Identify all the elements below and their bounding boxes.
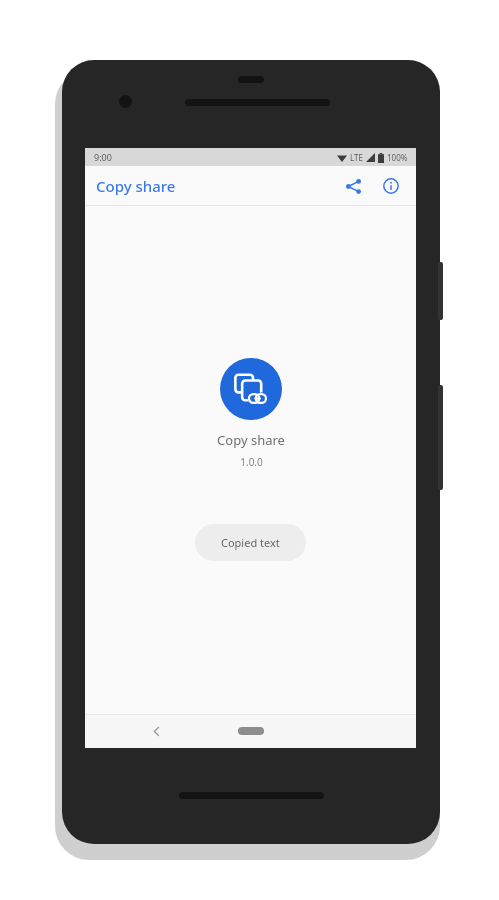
- staticText: 9:00: [94, 151, 112, 163]
- staticText: Copy share: [217, 431, 285, 449]
- button[interactable]: Home: [233, 716, 269, 746]
- button[interactable]: Info: [376, 171, 406, 201]
- staticText: 1.0.0: [240, 455, 263, 469]
- staticText: 100%: [387, 152, 408, 163]
- staticText: Copy share: [96, 176, 176, 196]
- button[interactable]: Share: [338, 171, 368, 201]
- button[interactable]: Back: [141, 716, 171, 746]
- button[interactable]: Copy share app icon: [220, 358, 282, 420]
- staticText: Copied text: [221, 535, 280, 550]
- button[interactable]: Copied text: [195, 524, 306, 561]
- staticText: LTE: [350, 152, 363, 163]
